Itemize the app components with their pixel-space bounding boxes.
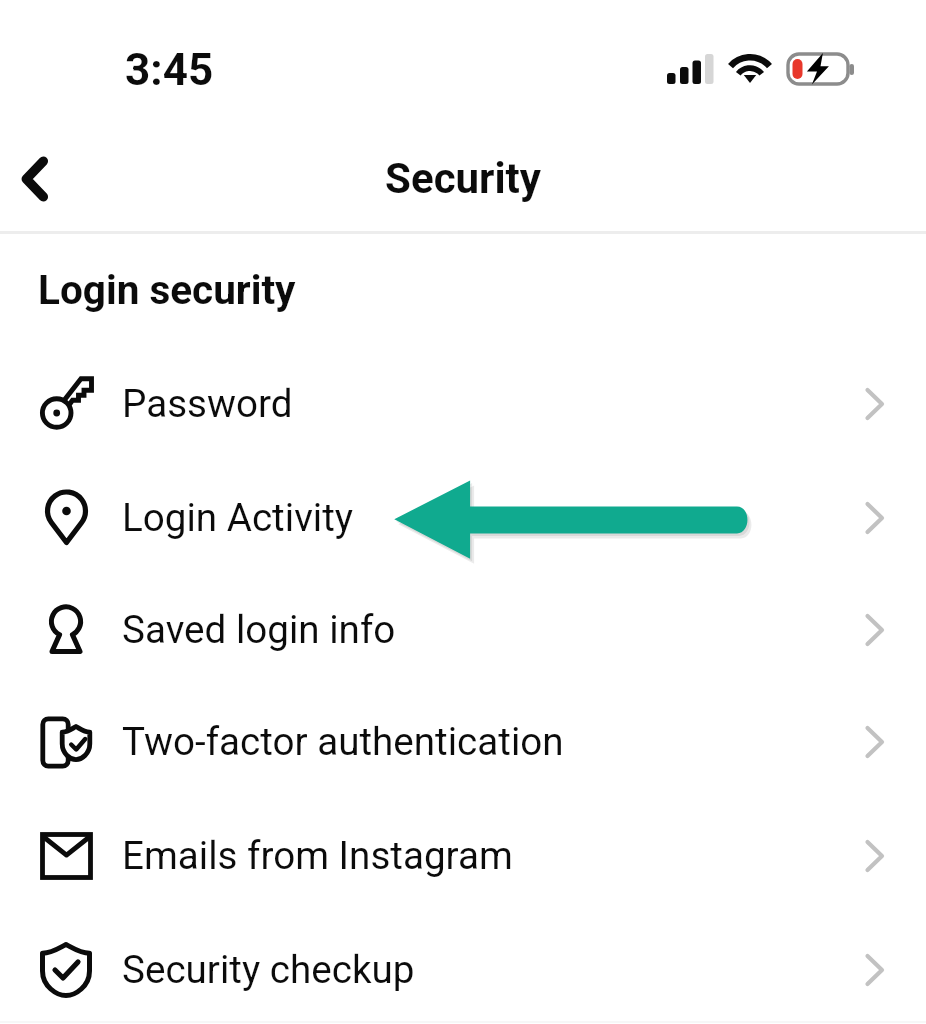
button[interactable]: Password [0,347,926,460]
button[interactable]: Saved login info [0,573,926,686]
button[interactable]: Two-factor authentication [0,685,926,798]
button[interactable]: Back [0,138,75,218]
button[interactable]: Security checkup [0,913,926,1024]
staticText: Two-factor authentication [122,719,564,764]
button[interactable]: Login Activity [0,461,926,574]
staticText: 3:45 [125,44,214,96]
staticText: Security checkup [122,947,415,992]
button[interactable]: Emails from Instagram [0,799,926,912]
staticText: Login security [38,266,296,313]
staticText: Security [385,154,541,203]
staticText: Login Activity [122,495,354,540]
staticText: Emails from Instagram [122,833,513,878]
staticText: Password [122,381,293,426]
staticText: Saved login info [122,607,396,652]
